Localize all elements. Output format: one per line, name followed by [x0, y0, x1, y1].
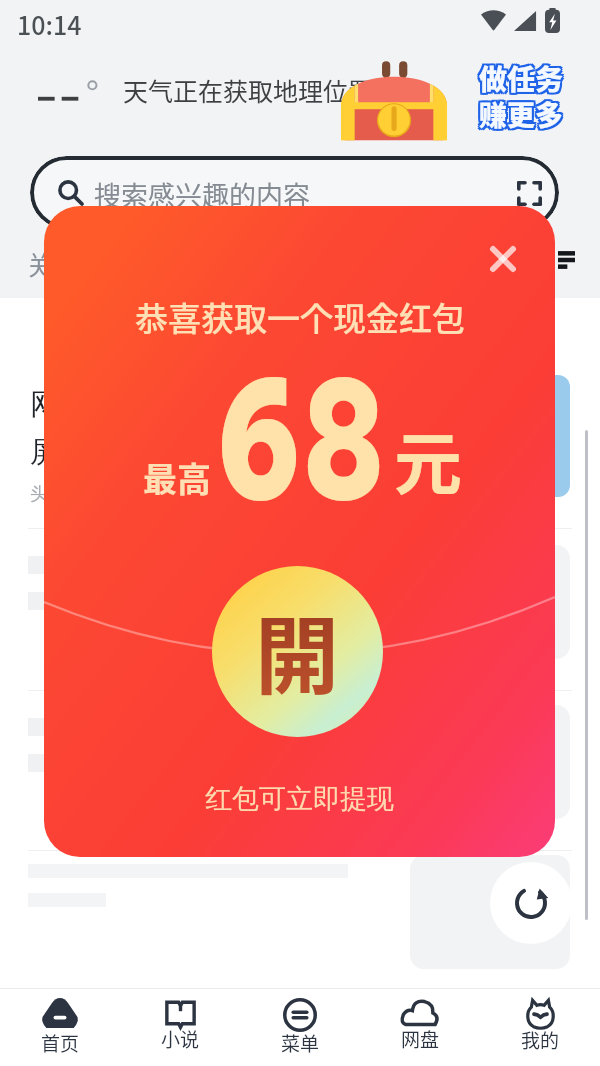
- staticText: 天气正在获取地理位置...: [123, 72, 394, 108]
- button[interactable]: 网盘: [360, 989, 480, 1066]
- staticText: 赚更多: [481, 96, 566, 131]
- button[interactable]: 開: [212, 566, 383, 737]
- staticText: 赚更多: [481, 94, 566, 129]
- button[interactable]: Refresh: [490, 862, 572, 944]
- staticText: 最高: [143, 453, 211, 502]
- staticText: 做任务: [481, 58, 566, 99]
- staticText: 赚更多: [479, 92, 564, 127]
- staticText: 做任务: [479, 58, 564, 99]
- button[interactable]: 关注: [26, 245, 79, 283]
- staticText: 赚更多: [477, 94, 562, 129]
- staticText: 赚更多: [477, 92, 562, 127]
- staticText: 赚更多: [477, 96, 562, 131]
- staticText: 做任务: [479, 60, 564, 101]
- staticText: 赚更多: [479, 94, 564, 129]
- button[interactable]: Close: [481, 237, 525, 281]
- staticText: 红包可立即提现: [205, 782, 394, 816]
- staticText: 開: [255, 590, 340, 712]
- staticText: 做任务: [477, 60, 562, 101]
- staticText: 做任务: [477, 58, 562, 99]
- staticText: 网盘: [401, 1025, 440, 1053]
- button[interactable]: 搜索感兴趣的内容: [30, 156, 559, 229]
- button[interactable]: 我的: [480, 989, 600, 1066]
- staticText: 68: [216, 337, 386, 542]
- staticText: 赚更多: [479, 96, 564, 131]
- button[interactable]: Menu: [549, 243, 583, 277]
- button[interactable]: 小说: [120, 989, 240, 1066]
- staticText: 小说: [161, 1025, 200, 1053]
- staticText: 元: [394, 410, 463, 508]
- staticText: 屏时直接使用: [30, 434, 204, 471]
- staticText: 做任务: [479, 56, 564, 97]
- staticText: 做任务: [477, 56, 562, 97]
- staticText: 头条资讯: [30, 483, 102, 506]
- staticText: 做任务: [481, 56, 566, 97]
- staticText: 10:14: [17, 6, 82, 42]
- staticText: 赚更多: [481, 92, 566, 127]
- staticText: 搜索感兴趣的内容: [94, 175, 310, 214]
- staticText: 恭喜获取一个现金红包: [135, 293, 465, 341]
- button[interactable]: 菜单: [240, 989, 360, 1066]
- staticText: 首页: [41, 1029, 80, 1057]
- staticText: 我的: [521, 1026, 560, 1054]
- button[interactable]: 做任务: [479, 58, 567, 134]
- staticText: 网盘免费扩容: [30, 386, 204, 423]
- staticText: 菜单: [281, 1029, 320, 1057]
- button[interactable]: 首页: [0, 989, 120, 1066]
- staticText: 做任务: [481, 60, 566, 101]
